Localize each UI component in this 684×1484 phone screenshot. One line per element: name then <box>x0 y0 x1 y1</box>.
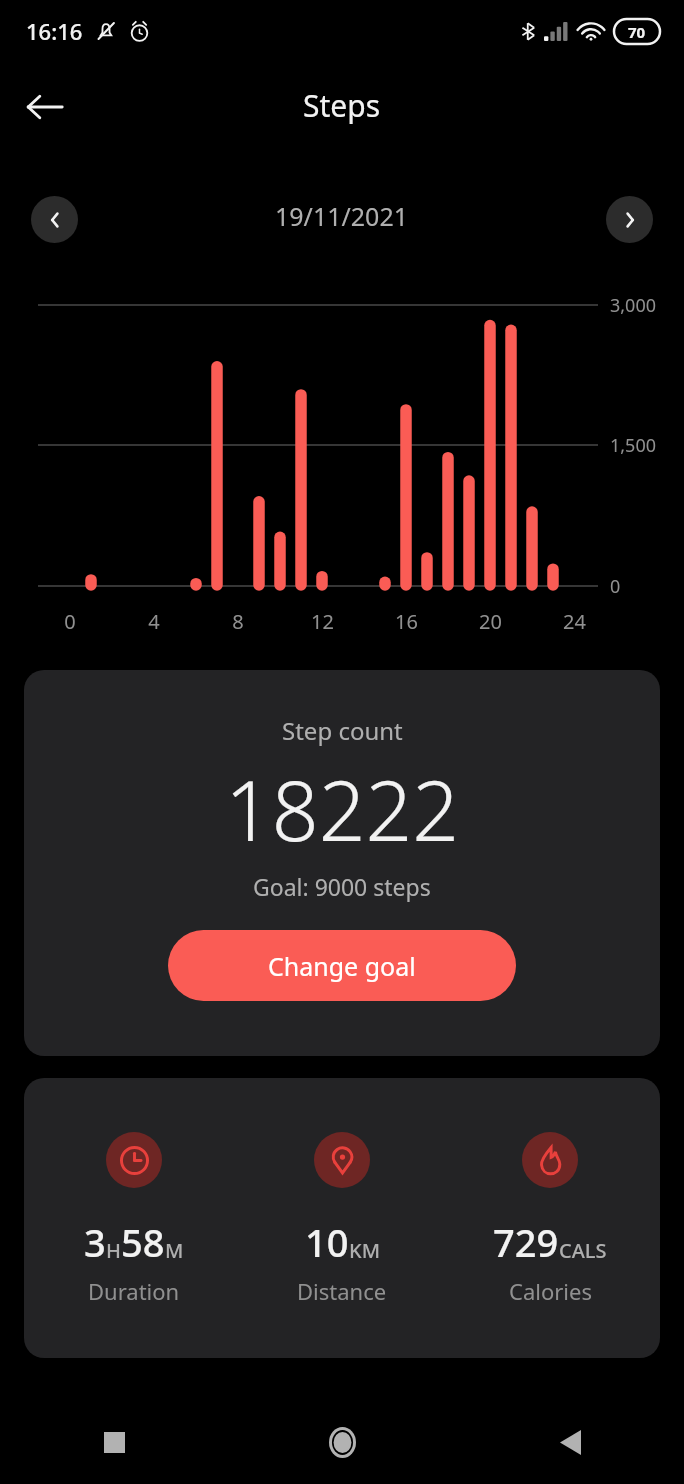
button[interactable]: Previous day <box>31 196 78 243</box>
staticText: 18222 <box>225 753 460 865</box>
staticText: 58 <box>121 1216 165 1268</box>
staticText: 19/11/2021 <box>275 199 409 233</box>
staticText: 10 <box>305 1216 349 1268</box>
staticText: 3,000 <box>610 293 657 318</box>
button[interactable]: 729 <box>452 1132 648 1306</box>
staticText: 4 <box>148 608 160 635</box>
staticText: 70 <box>628 22 646 42</box>
staticText: Steps <box>303 85 381 126</box>
staticText: 16:16 <box>26 16 83 46</box>
staticText: 729 <box>493 1216 559 1268</box>
staticText: 0 <box>610 574 621 599</box>
staticText: 3 <box>84 1216 106 1268</box>
staticText: 16 <box>395 608 418 635</box>
staticText: KM <box>349 1237 380 1264</box>
staticText: 24 <box>563 608 586 635</box>
staticText: Change goal <box>268 949 416 983</box>
button[interactable]: Step count <box>24 670 660 1056</box>
button[interactable]: Back <box>456 1400 684 1484</box>
staticText: M <box>165 1237 184 1264</box>
button[interactable]: Back <box>12 74 78 140</box>
staticText: Calories <box>509 1276 592 1306</box>
staticText: 0 <box>64 608 76 635</box>
button[interactable]: Next day <box>606 196 653 243</box>
staticText: Step count <box>282 714 403 747</box>
staticText: 20 <box>479 608 502 635</box>
button[interactable]: Recents <box>0 1400 228 1484</box>
button[interactable]: 3 <box>36 1132 232 1306</box>
button[interactable]: Home <box>228 1400 456 1484</box>
staticText: Distance <box>297 1276 387 1306</box>
button[interactable]: Change goal <box>168 930 516 1001</box>
button[interactable]: 10 <box>244 1132 440 1306</box>
staticText: CALS <box>559 1237 607 1264</box>
staticText: Duration <box>88 1276 180 1306</box>
staticText: 12 <box>311 608 334 635</box>
staticText: 8 <box>232 608 244 635</box>
staticText: Goal: 9000 steps <box>253 871 431 902</box>
staticText: 1,500 <box>610 433 657 458</box>
staticText: H <box>106 1237 121 1264</box>
